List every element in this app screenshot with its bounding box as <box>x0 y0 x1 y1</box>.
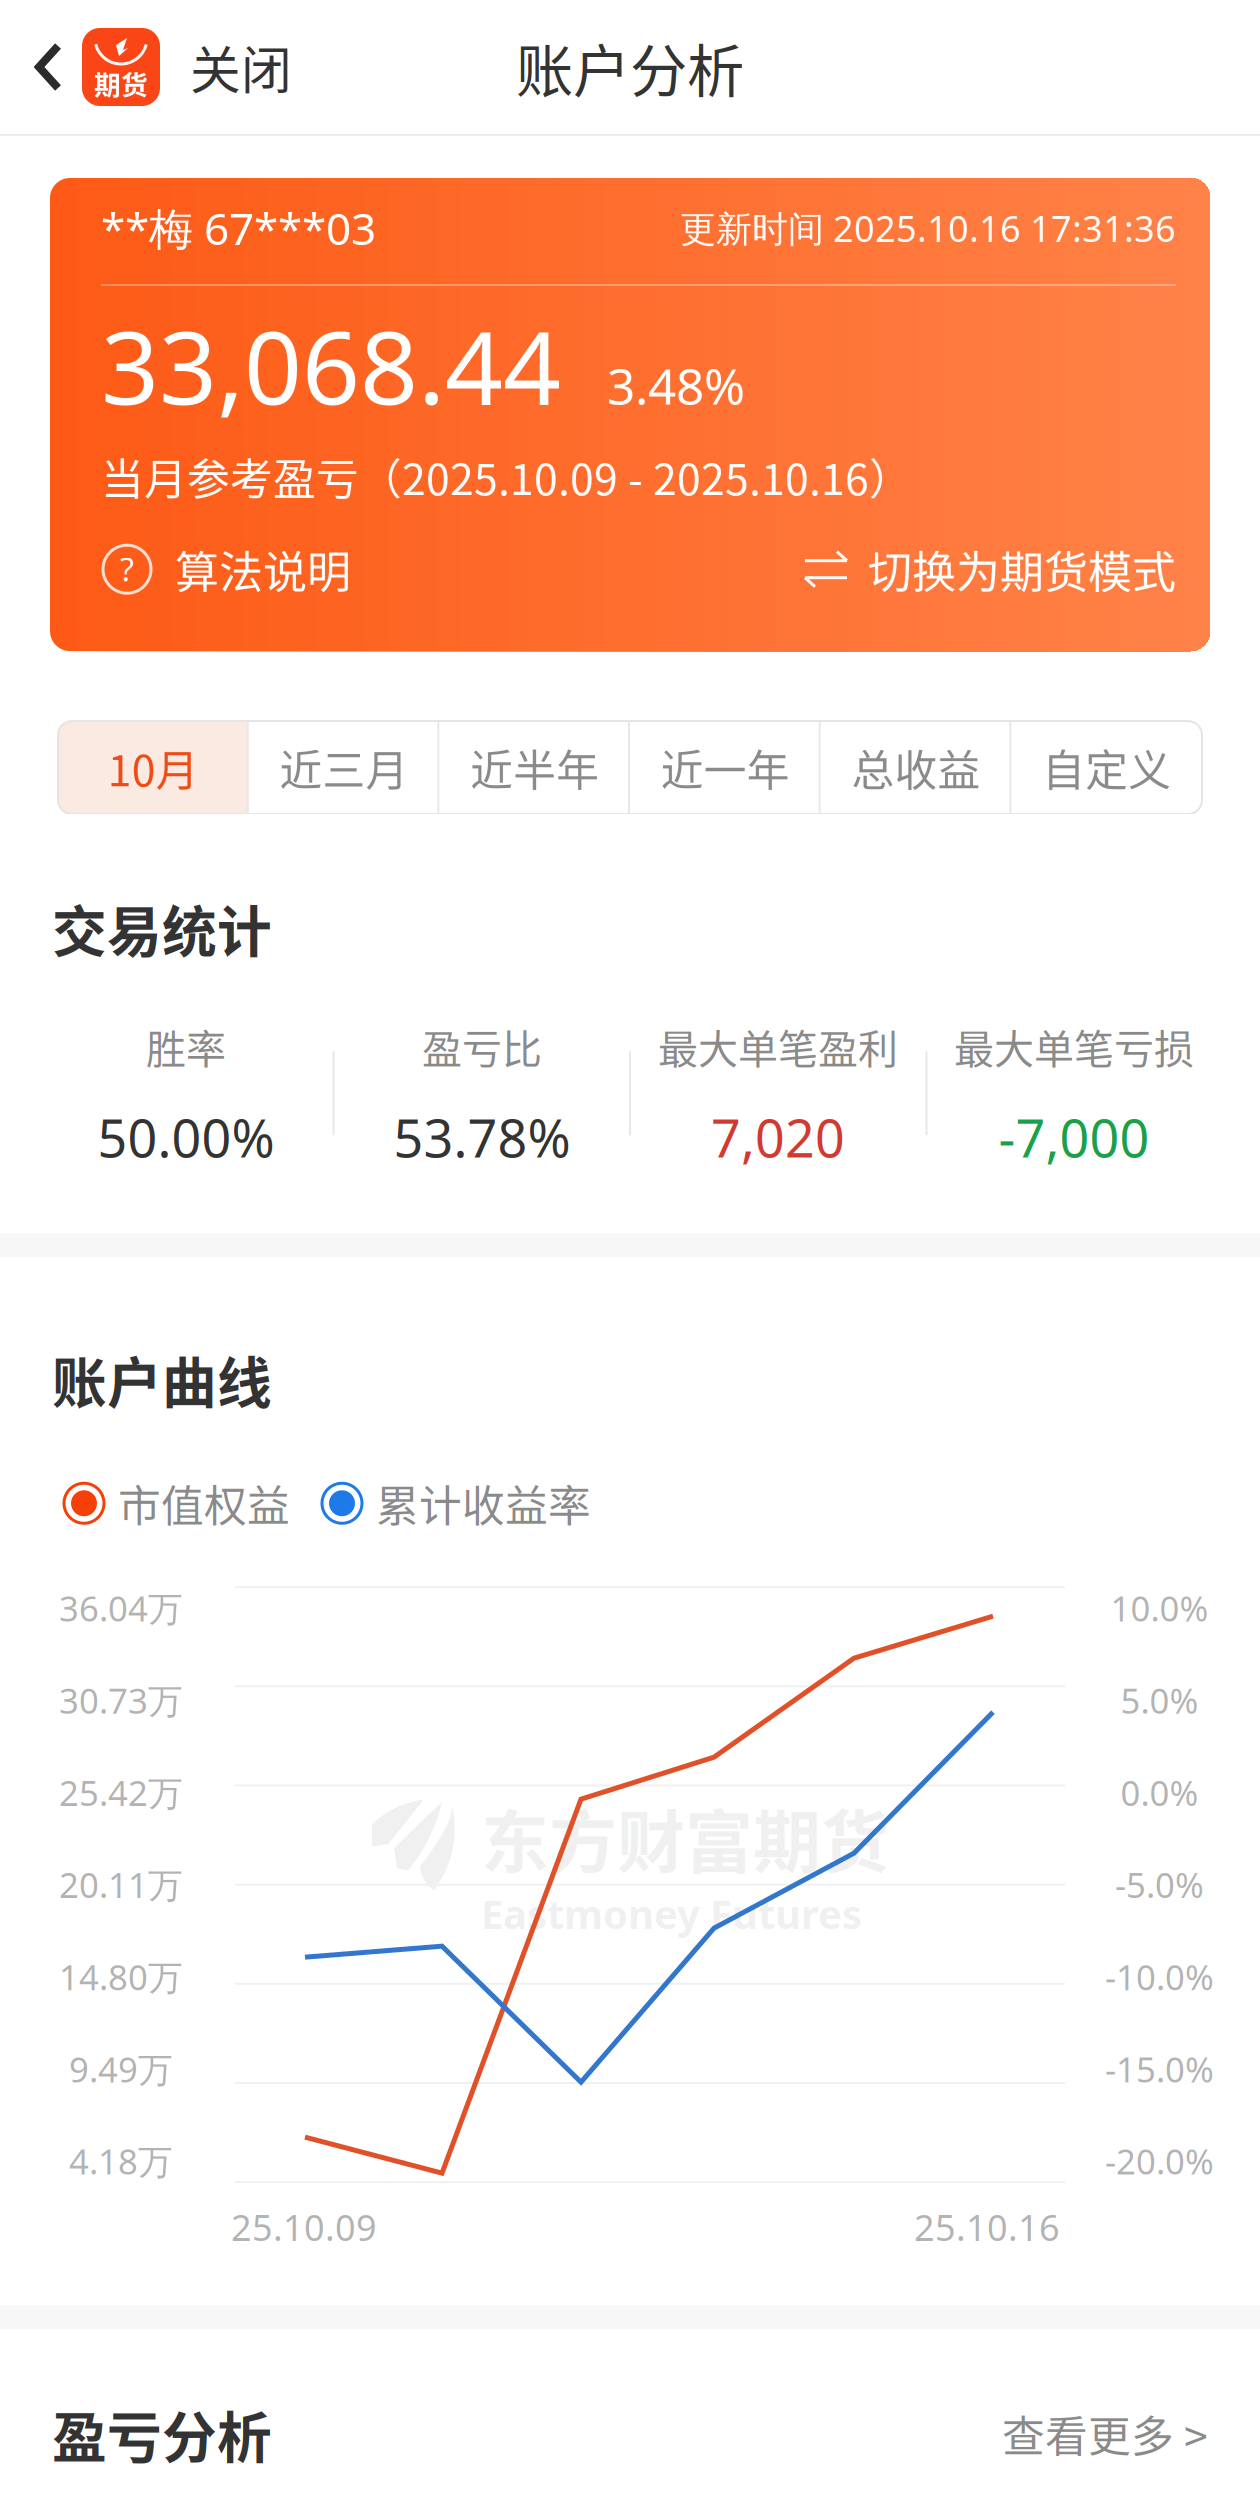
staticText: 算法说明 <box>175 537 351 601</box>
staticText: -15.0% <box>1105 2046 1214 2092</box>
button[interactable]: 市值权益 <box>62 1472 290 1534</box>
button[interactable]: 近半年 <box>439 721 630 814</box>
button[interactable]: 近一年 <box>630 721 821 814</box>
staticText: 关闭 <box>190 30 292 104</box>
staticText: **梅 67***03 <box>101 199 376 257</box>
staticText: 7,020 <box>711 1103 845 1172</box>
staticText: 36.04万 <box>59 1585 183 1631</box>
staticText: 最大单笔盈利 <box>658 1017 898 1075</box>
staticText: 25.10.09 <box>231 2203 377 2251</box>
staticText: 盈亏分析 <box>52 2394 272 2473</box>
staticText: 9.49万 <box>69 2046 173 2092</box>
staticText: 14.80万 <box>59 1954 183 2000</box>
staticText: 切换为期货模式 <box>868 537 1176 601</box>
button[interactable]: 累计收益率 <box>320 1472 591 1534</box>
staticText: 更新时间 2025.10.16 17:31:36 <box>680 204 1176 252</box>
staticText: 累计收益率 <box>376 1472 591 1534</box>
button[interactable]: 自定义 <box>1011 721 1202 814</box>
staticText: 近一年 <box>661 737 790 798</box>
staticText: 近半年 <box>470 737 599 798</box>
staticText: 50.00% <box>97 1103 274 1172</box>
button[interactable]: 期货 <box>0 0 312 134</box>
button[interactable]: ? <box>101 537 351 601</box>
staticText: 33,068.44 <box>101 298 561 433</box>
staticText: -5.0% <box>1115 1862 1204 1908</box>
staticText: 账户曲线 <box>52 1339 272 1418</box>
staticText: 0.0% <box>1120 1769 1198 1815</box>
staticText: 10月 <box>108 737 199 798</box>
staticText: 10.0% <box>1110 1585 1208 1631</box>
staticText: 近三月 <box>279 737 408 798</box>
staticText: 4.18万 <box>69 2138 173 2184</box>
staticText: 25.10.16 <box>914 2203 1060 2251</box>
staticText: 东方财富期货 <box>481 1788 889 1887</box>
button[interactable]: 近三月 <box>249 721 439 814</box>
staticText: 最大单笔亏损 <box>954 1017 1194 1075</box>
staticText: 胜率 <box>146 1017 226 1075</box>
staticText: 交易统计 <box>52 888 272 967</box>
staticText: 期货 <box>94 64 148 102</box>
staticText: 当月参考盈亏（2025.10.09 - 2025.10.16） <box>101 446 912 507</box>
staticText: 5.0% <box>1120 1677 1198 1723</box>
staticText: 30.73万 <box>59 1677 183 1723</box>
staticText: 3.48% <box>607 353 745 418</box>
staticText: 总收益 <box>851 737 980 798</box>
staticText: 53.78% <box>393 1103 570 1172</box>
staticText: 25.42万 <box>59 1769 183 1815</box>
staticText: 账户分析 <box>516 25 744 108</box>
staticText: -10.0% <box>1105 1954 1214 2000</box>
staticText: 查看更多 > <box>1002 2403 1208 2464</box>
staticText: 盈亏比 <box>422 1017 542 1075</box>
staticText: -20.0% <box>1105 2138 1214 2184</box>
staticText: ? <box>120 548 134 590</box>
staticText: 20.11万 <box>59 1862 183 1908</box>
staticText: Eastmoney Futures <box>481 1887 862 1940</box>
button[interactable]: 10月 <box>58 721 249 814</box>
staticText: 自定义 <box>1042 737 1171 798</box>
button[interactable]: 查看更多 > <box>1002 2403 1208 2464</box>
staticText: -7,000 <box>998 1103 1149 1172</box>
button[interactable]: 切换为期货模式 <box>802 537 1176 601</box>
staticText: 市值权益 <box>118 1472 290 1534</box>
button[interactable]: 总收益 <box>821 721 1011 814</box>
